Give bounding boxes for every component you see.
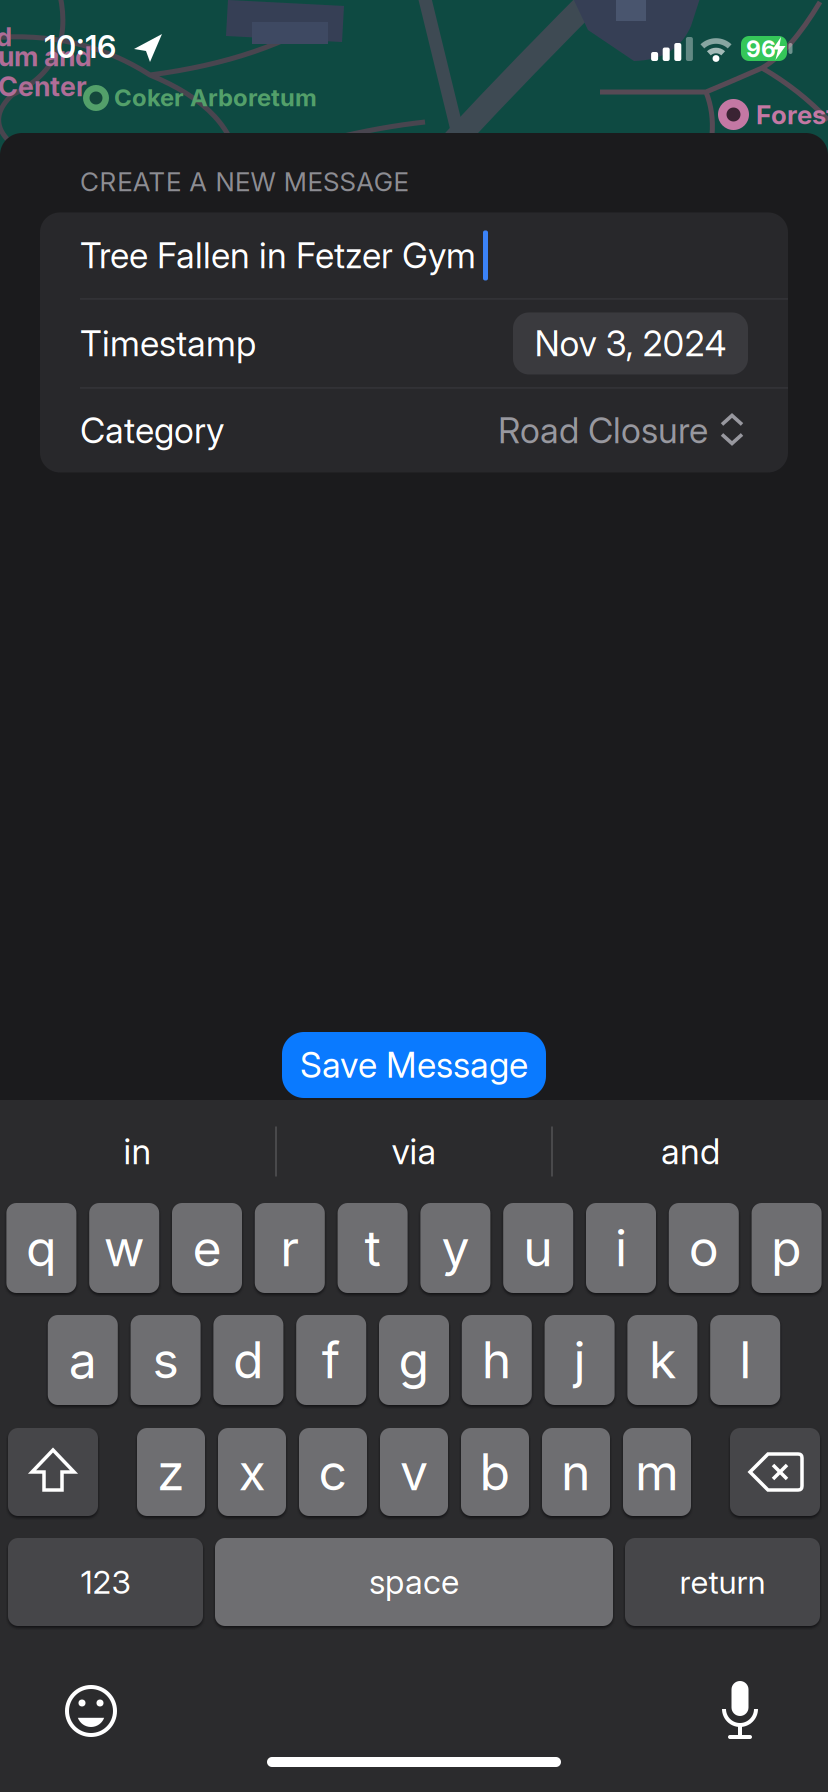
staticText: um and bbox=[0, 40, 92, 73]
staticText: v bbox=[400, 1442, 428, 1502]
button[interactable]: s bbox=[131, 1315, 201, 1405]
button[interactable]: h bbox=[462, 1315, 532, 1405]
staticText: n bbox=[561, 1442, 591, 1502]
staticText: Save Message bbox=[300, 1044, 528, 1086]
staticText: s bbox=[153, 1330, 179, 1390]
button[interactable]: a bbox=[48, 1315, 118, 1405]
button[interactable]: f bbox=[296, 1315, 366, 1405]
staticText: u bbox=[523, 1218, 553, 1278]
staticText: 10:16 bbox=[44, 28, 116, 65]
button[interactable]: Tree Fallen in Fetzer Gym bbox=[40, 212, 788, 298]
staticText: z bbox=[157, 1442, 185, 1502]
staticText: y bbox=[441, 1218, 469, 1278]
button[interactable]: m bbox=[623, 1428, 691, 1516]
button[interactable]: u bbox=[503, 1203, 573, 1293]
staticText: Tree Fallen in Fetzer Gym bbox=[80, 234, 476, 277]
button[interactable]: Save Message bbox=[282, 1032, 546, 1098]
button[interactable] bbox=[730, 1428, 820, 1516]
button[interactable]: p bbox=[752, 1203, 822, 1293]
button[interactable]: q bbox=[6, 1203, 76, 1293]
staticText: 123 bbox=[80, 1563, 130, 1601]
staticText: t bbox=[365, 1218, 381, 1278]
button[interactable]: k bbox=[627, 1315, 697, 1405]
button[interactable]: z bbox=[137, 1428, 205, 1516]
staticText: i bbox=[615, 1218, 627, 1278]
staticText: Coker Arboretum bbox=[114, 83, 317, 112]
staticText: l bbox=[739, 1330, 751, 1390]
button[interactable]: via bbox=[277, 1100, 551, 1203]
button[interactable]: l bbox=[710, 1315, 780, 1405]
staticText: x bbox=[238, 1442, 265, 1502]
button[interactable]: t bbox=[338, 1203, 408, 1293]
button[interactable]: v bbox=[380, 1428, 448, 1516]
button[interactable]: 123 bbox=[8, 1538, 203, 1626]
staticText: k bbox=[649, 1330, 676, 1390]
button[interactable]: r bbox=[255, 1203, 325, 1293]
staticText: Category bbox=[80, 409, 224, 452]
staticText: Center bbox=[0, 70, 87, 103]
button[interactable]: w bbox=[89, 1203, 159, 1293]
staticText: CREATE A NEW MESSAGE bbox=[80, 166, 408, 197]
staticText: 96 bbox=[746, 35, 776, 63]
button[interactable]: space bbox=[215, 1538, 613, 1626]
staticText: w bbox=[104, 1218, 145, 1278]
staticText: m bbox=[635, 1442, 679, 1502]
button[interactable]: Timestamp bbox=[40, 299, 788, 387]
staticText: return bbox=[679, 1563, 765, 1601]
button[interactable]: Category bbox=[40, 388, 788, 472]
staticText: q bbox=[26, 1218, 57, 1278]
staticText: c bbox=[318, 1442, 347, 1502]
button[interactable]: x bbox=[218, 1428, 286, 1516]
staticText: r bbox=[280, 1218, 299, 1278]
staticText: f bbox=[322, 1330, 341, 1390]
staticText: space bbox=[369, 1562, 459, 1602]
button[interactable]: g bbox=[379, 1315, 449, 1405]
staticText: Timestamp bbox=[80, 322, 256, 365]
staticText: j bbox=[574, 1330, 586, 1390]
button[interactable]: return bbox=[625, 1538, 820, 1626]
staticText: a bbox=[69, 1330, 97, 1390]
staticText: in bbox=[123, 1130, 151, 1173]
staticText: d bbox=[233, 1330, 264, 1390]
button[interactable] bbox=[8, 1428, 98, 1516]
staticText: Nov 3, 2024 bbox=[534, 322, 726, 365]
button[interactable]: e bbox=[172, 1203, 242, 1293]
button[interactable]: o bbox=[669, 1203, 739, 1293]
button[interactable]: and bbox=[553, 1100, 828, 1203]
staticText: Road Closure bbox=[498, 409, 708, 452]
staticText: d bbox=[0, 21, 12, 52]
staticText: p bbox=[771, 1218, 802, 1278]
button[interactable]: i bbox=[586, 1203, 656, 1293]
staticText: Forest T bbox=[756, 99, 828, 130]
staticText: via bbox=[391, 1130, 436, 1173]
button[interactable]: d bbox=[213, 1315, 283, 1405]
button[interactable]: y bbox=[420, 1203, 490, 1293]
staticText: e bbox=[192, 1218, 221, 1278]
button[interactable]: c bbox=[299, 1428, 367, 1516]
staticText: and bbox=[661, 1130, 720, 1173]
button[interactable]: n bbox=[542, 1428, 610, 1516]
staticText: o bbox=[689, 1218, 719, 1278]
staticText: g bbox=[398, 1330, 429, 1390]
button[interactable]: j bbox=[545, 1315, 615, 1405]
staticText: b bbox=[479, 1442, 510, 1502]
button[interactable]: b bbox=[461, 1428, 529, 1516]
staticText: h bbox=[482, 1330, 512, 1390]
button[interactable]: in bbox=[0, 1100, 275, 1203]
